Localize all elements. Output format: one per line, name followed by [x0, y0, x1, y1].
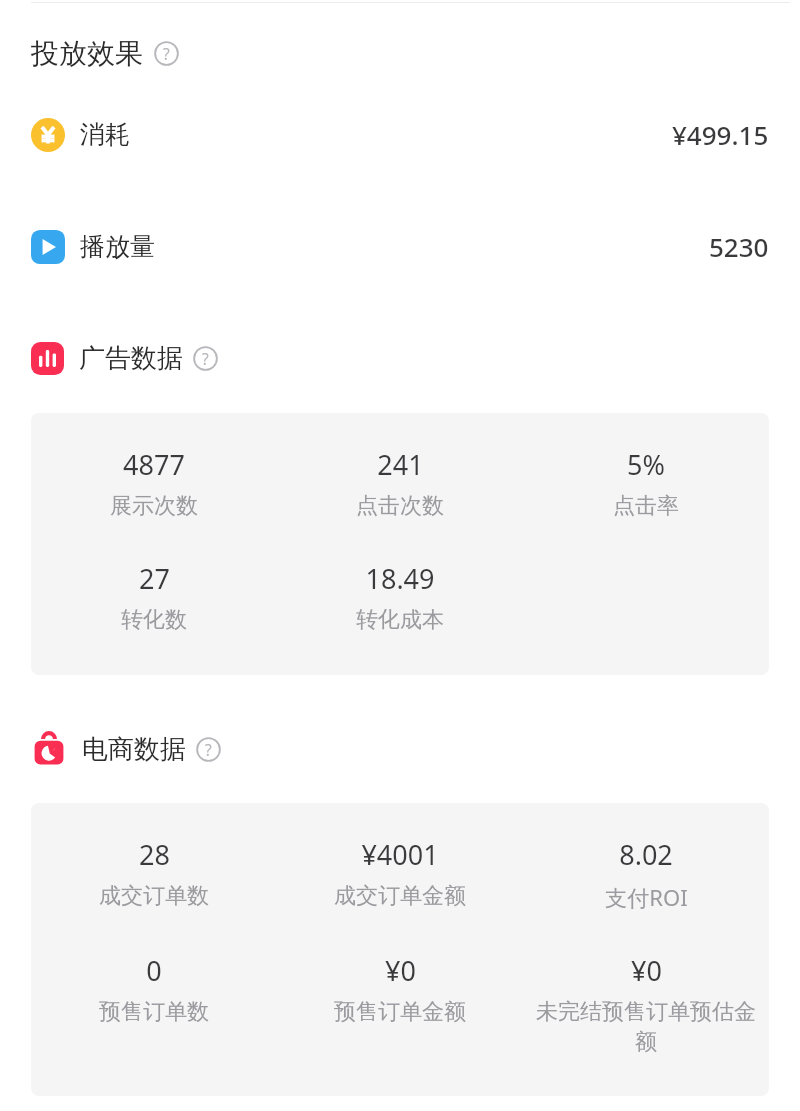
button[interactable]: 帮助说明 [154, 41, 179, 66]
button[interactable]: 帮助说明 [193, 346, 218, 371]
button[interactable]: 帮助说明 [196, 737, 221, 762]
staticText: ? [205, 739, 212, 760]
staticText: 未完结预售订单预估金额 [527, 998, 765, 1056]
staticText: 成交订单数 [99, 882, 209, 910]
button[interactable]: 电商数据 [0, 731, 800, 767]
staticText: 18.49 [365, 560, 435, 597]
staticText: 点击率 [613, 492, 679, 520]
button[interactable]: 消耗 [0, 117, 800, 152]
staticText: 展示次数 [110, 492, 198, 520]
staticText: 播放量 [80, 231, 155, 262]
button[interactable]: 28 [31, 803, 769, 1096]
staticText: 转化数 [121, 606, 187, 634]
staticText: 8.02 [619, 836, 673, 873]
staticText: 消耗 [80, 119, 130, 150]
staticText: ¥0 [385, 952, 416, 989]
staticText: 点击次数 [356, 492, 444, 520]
staticText: ¥4001 [361, 836, 439, 873]
staticText: 电商数据 [82, 733, 186, 766]
staticText: 4877 [123, 446, 185, 483]
staticText: ? [202, 348, 209, 369]
staticText: ¥0 [631, 952, 662, 989]
button[interactable]: 投放效果 [0, 36, 800, 71]
staticText: 5230 [709, 229, 769, 264]
staticText: 预售订单数 [99, 998, 209, 1026]
button[interactable]: 播放量 [0, 229, 800, 264]
staticText: ¥499.15 [672, 117, 769, 152]
staticText: 5% [627, 446, 665, 483]
staticText: ? [163, 43, 170, 64]
staticText: 广告数据 [79, 342, 183, 375]
staticText: 转化成本 [356, 606, 444, 634]
staticText: 预售订单金额 [334, 998, 466, 1026]
button[interactable]: 广告数据 [0, 342, 800, 375]
button[interactable]: 4877 [31, 413, 769, 675]
staticText: 0 [146, 952, 162, 989]
staticText: 支付ROI [605, 882, 688, 912]
staticText: 241 [377, 446, 424, 483]
staticText: 27 [139, 560, 170, 597]
staticText: 28 [139, 836, 170, 873]
staticText: 成交订单金额 [334, 882, 466, 910]
staticText: 投放效果 [31, 36, 143, 71]
